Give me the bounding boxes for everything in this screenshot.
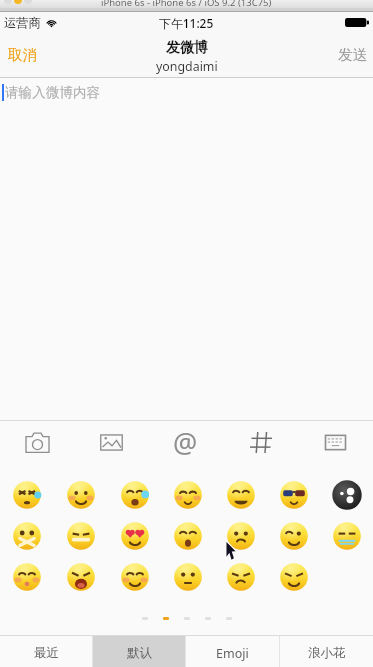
button[interactable]: Camera — [0, 420, 74, 465]
staticText: yongdaimi — [156, 58, 218, 75]
button[interactable]: Emoji 13 — [267, 515, 320, 556]
staticText: 发送 — [338, 46, 368, 65]
button[interactable]: Emoji 7 — [320, 474, 373, 515]
button[interactable]: Photo — [74, 420, 148, 465]
staticText: 浪小花 — [308, 645, 346, 661]
staticText: iPhone 6s - iPhone 6s / iOS 9.2 (13C75) — [101, 0, 272, 8]
button[interactable]: Emoji 6 — [267, 474, 320, 515]
button[interactable]: Emoji 16 — [54, 556, 108, 597]
button[interactable]: Emoji 11 — [161, 515, 214, 556]
button[interactable]: Emoji 12 — [214, 515, 267, 556]
staticText: 请输入微博内容 — [5, 84, 101, 101]
button[interactable]: Emoji — [186, 635, 279, 667]
button[interactable]: Emoji 17 — [108, 556, 161, 597]
button[interactable]: 发送 — [328, 38, 373, 73]
staticText: 最近 — [34, 645, 59, 661]
button[interactable]: Emoji 3 — [108, 474, 161, 515]
staticText: 默认 — [127, 645, 152, 661]
button[interactable]: Topic — [223, 420, 298, 465]
button[interactable]: Emoji 15 — [0, 556, 54, 597]
button[interactable]: Emoji 9 — [54, 515, 108, 556]
staticText: 运营商 — [4, 15, 41, 30]
staticText: 下午11:25 — [159, 15, 214, 31]
button[interactable]: Emoji 5 — [214, 474, 267, 515]
staticText: 取消 — [8, 46, 38, 65]
button[interactable]: 浪小花 — [280, 635, 373, 667]
button[interactable]: Emoji 14 — [320, 515, 373, 556]
button[interactable]: Mention — [148, 420, 223, 465]
button[interactable]: Emoji 2 — [54, 474, 108, 515]
button[interactable]: Emoji 4 — [161, 474, 214, 515]
button[interactable]: Keyboard — [298, 420, 373, 465]
button[interactable]: Emoji 20 — [267, 556, 320, 597]
button[interactable]: Emoji 8 — [0, 515, 54, 556]
button[interactable]: Emoji 10 — [108, 515, 161, 556]
button[interactable]: 默认 — [93, 635, 185, 667]
button[interactable]: 取消 — [0, 38, 48, 73]
button[interactable]: Emoji 18 — [161, 556, 214, 597]
button[interactable]: Emoji 19 — [214, 556, 267, 597]
staticText: Emoji — [216, 645, 249, 662]
button[interactable]: 最近 — [0, 635, 92, 667]
staticText: @ — [173, 424, 198, 461]
staticText: 发微博 — [166, 39, 208, 57]
button[interactable]: Emoji 1 — [0, 474, 54, 515]
